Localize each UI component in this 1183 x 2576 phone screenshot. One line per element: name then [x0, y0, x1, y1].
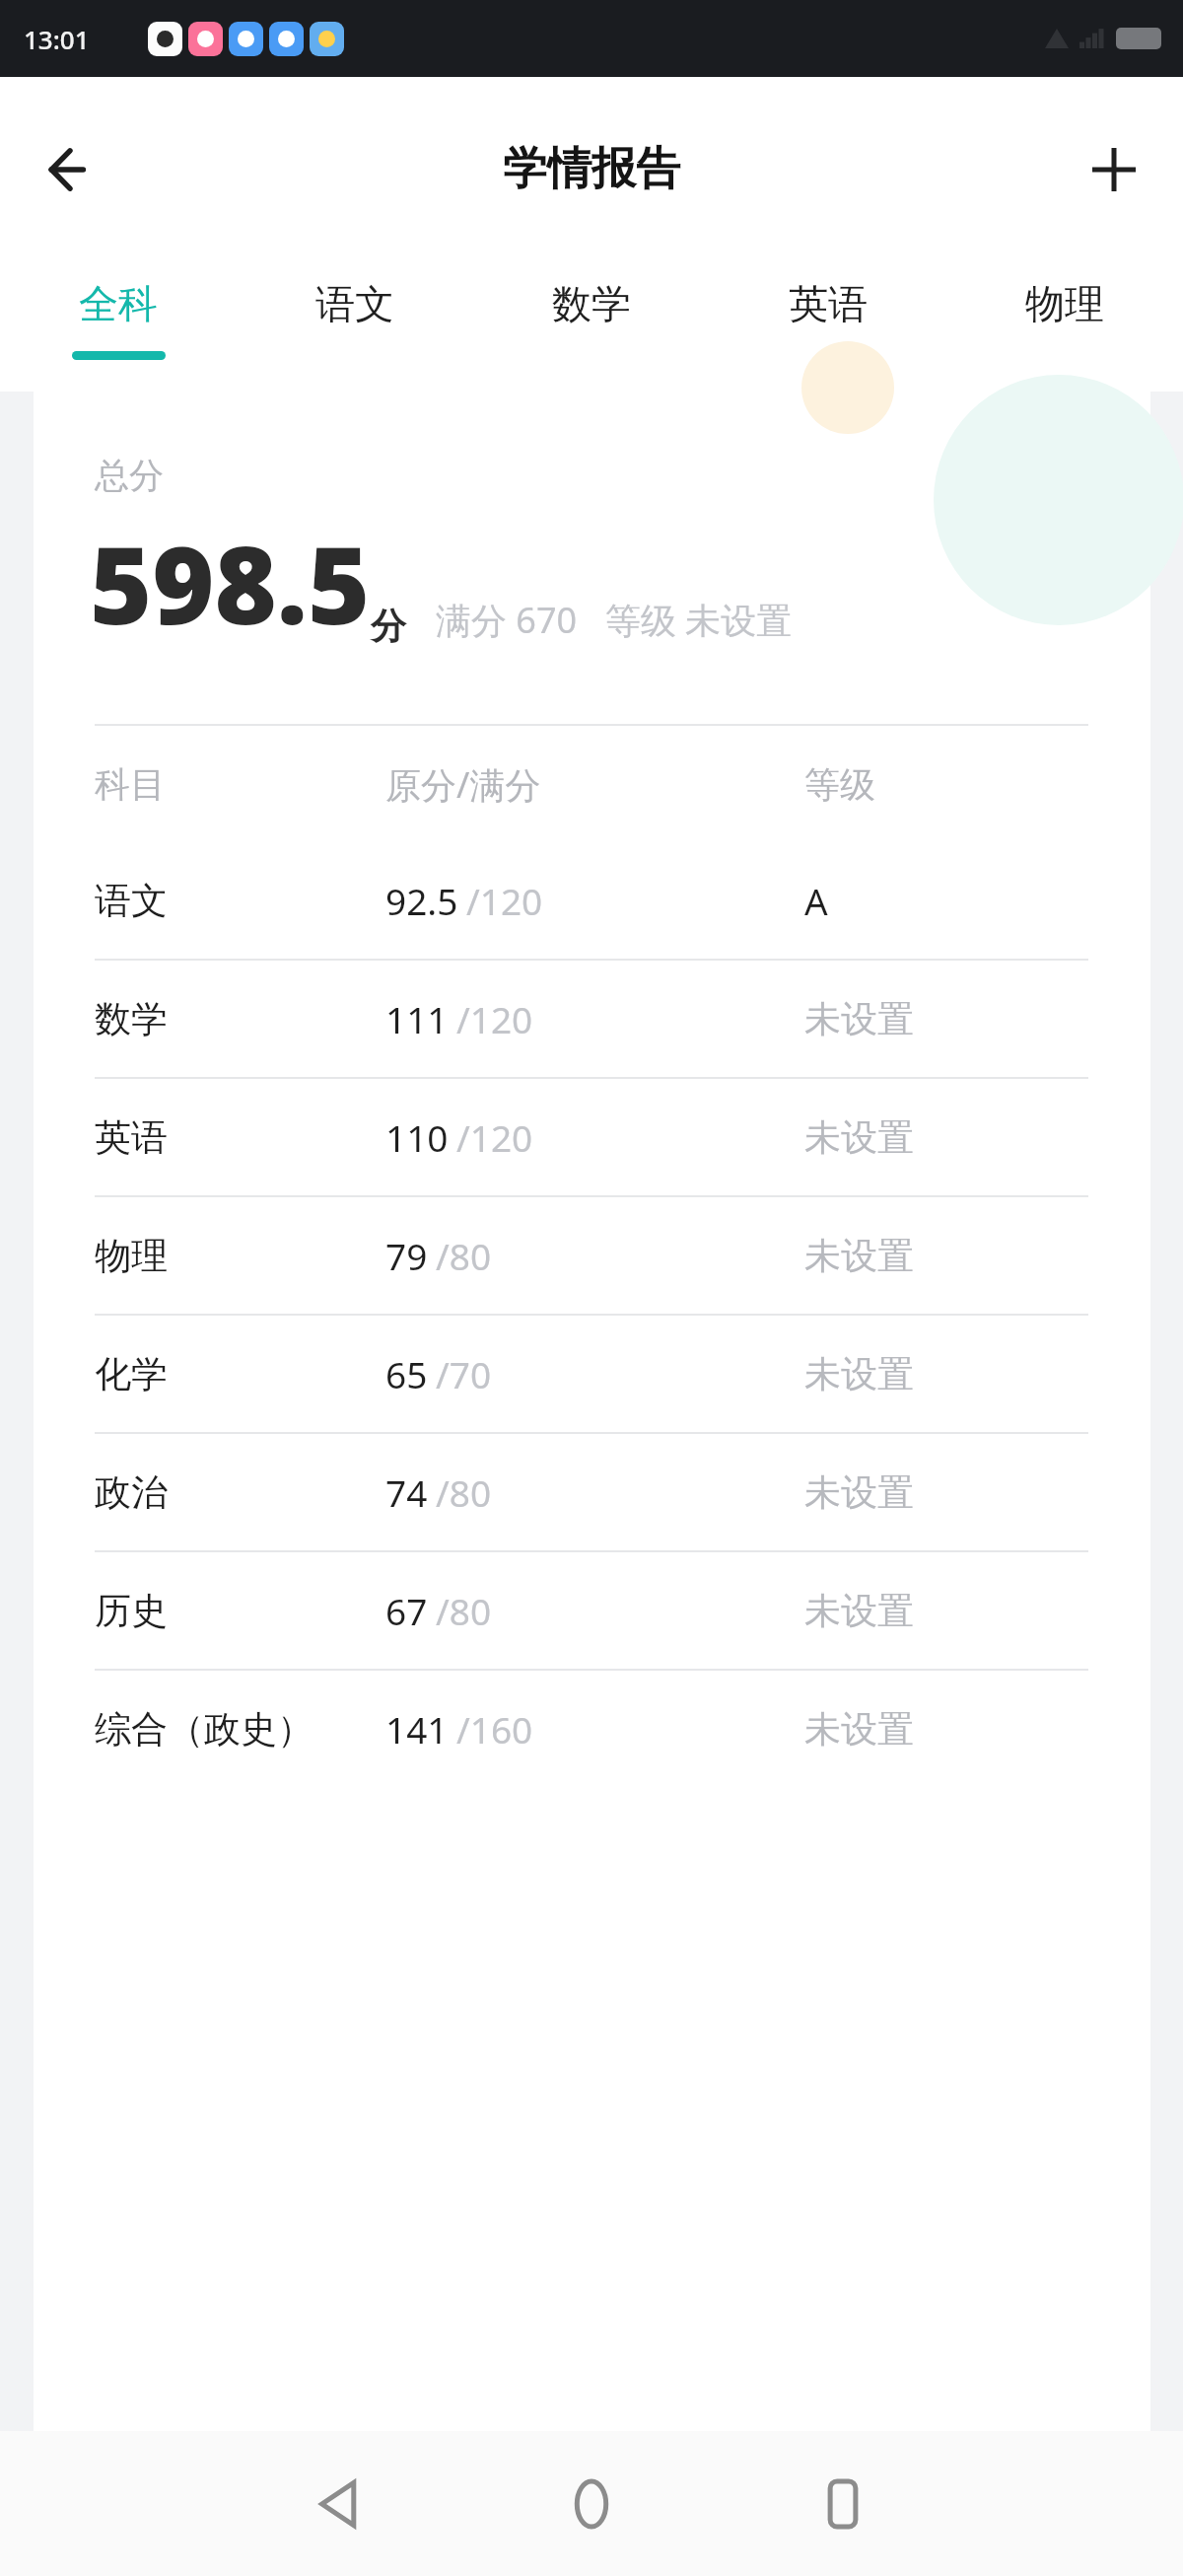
staticText: 政治 — [95, 1469, 385, 1516]
button[interactable]: 语文 — [34, 842, 1150, 959]
staticText: 原分/满分 — [385, 760, 804, 809]
staticText: /80 — [436, 1231, 492, 1280]
staticText: 分 — [371, 604, 406, 648]
staticText: /120 — [456, 994, 533, 1043]
staticText: 110 — [385, 1112, 449, 1162]
button[interactable]: Add — [1061, 116, 1167, 223]
staticText: 未设置 — [804, 996, 914, 1042]
button[interactable]: 综合（政史） — [34, 1671, 1150, 1787]
staticText: 语文 — [315, 279, 394, 328]
staticText: 英语 — [95, 1114, 385, 1161]
button[interactable]: 化学 — [34, 1316, 1150, 1432]
staticText: 英语 — [789, 279, 868, 328]
button[interactable]: Recent apps — [784, 2445, 902, 2563]
button[interactable]: 物理 — [34, 1197, 1150, 1314]
staticText: A — [804, 876, 828, 925]
staticText: 科目 — [95, 762, 385, 807]
staticText: 未设置 — [804, 1233, 914, 1279]
staticText: 未设置 — [804, 1351, 914, 1397]
button[interactable]: 政治 — [34, 1434, 1150, 1550]
staticText: 等级 — [804, 762, 875, 807]
staticText: 语文 — [95, 878, 385, 924]
staticText: /80 — [436, 1467, 492, 1517]
staticText: /70 — [436, 1349, 492, 1398]
button[interactable]: 英语 — [710, 261, 946, 392]
staticText: 111 — [385, 994, 449, 1043]
staticText: /80 — [436, 1586, 492, 1635]
staticText: 13:01 — [24, 22, 90, 56]
staticText: 598.5 — [90, 511, 371, 656]
staticText: 综合（政史） — [95, 1706, 385, 1753]
staticText: 历史 — [95, 1588, 385, 1634]
staticText: 等级 未设置 — [605, 596, 793, 644]
button[interactable]: 历史 — [34, 1552, 1150, 1669]
staticText: /160 — [456, 1704, 533, 1753]
staticText: 未设置 — [804, 1114, 914, 1161]
staticText: 化学 — [95, 1351, 385, 1397]
button[interactable]: 英语 — [34, 1079, 1150, 1195]
staticText: 全科 — [79, 279, 158, 328]
button[interactable]: Back — [281, 2445, 399, 2563]
staticText: 92.5 — [385, 876, 458, 925]
staticText: 数学 — [95, 996, 385, 1042]
staticText: 67 — [385, 1586, 428, 1635]
button[interactable]: 数学 — [473, 261, 710, 392]
staticText: 74 — [385, 1467, 428, 1517]
button[interactable]: Home — [532, 2445, 651, 2563]
button[interactable]: 全科 — [0, 261, 237, 392]
staticText: 总分 — [95, 454, 164, 497]
staticText: /120 — [466, 876, 543, 925]
staticText: 未设置 — [804, 1469, 914, 1516]
button[interactable]: 语文 — [237, 261, 473, 392]
staticText: /120 — [456, 1112, 533, 1162]
staticText: 满分 670 — [436, 596, 578, 644]
staticText: 65 — [385, 1349, 428, 1398]
staticText: 未设置 — [804, 1706, 914, 1753]
staticText: 学情报告 — [503, 141, 680, 197]
button[interactable]: 数学 — [34, 961, 1150, 1077]
staticText: 79 — [385, 1231, 428, 1280]
staticText: 数学 — [552, 279, 631, 328]
button[interactable]: Back — [16, 116, 122, 223]
staticText: 未设置 — [804, 1588, 914, 1634]
staticText: 141 — [385, 1704, 449, 1753]
button[interactable]: 物理 — [946, 261, 1183, 392]
staticText: 物理 — [95, 1233, 385, 1279]
staticText: 物理 — [1025, 279, 1104, 328]
